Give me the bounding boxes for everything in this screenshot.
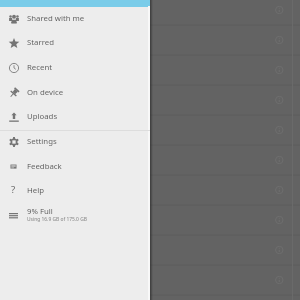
staticText: On device xyxy=(27,87,64,98)
button[interactable]: Starred xyxy=(0,31,150,56)
button[interactable]: Uploads xyxy=(0,105,150,130)
staticText: Settings xyxy=(27,136,57,147)
button[interactable] xyxy=(0,0,300,25)
staticText: Feedback xyxy=(27,161,62,172)
button[interactable] xyxy=(0,25,300,55)
button[interactable] xyxy=(0,85,300,115)
staticText: Recent xyxy=(27,62,53,73)
staticText: Uploads xyxy=(27,111,58,122)
button[interactable] xyxy=(0,175,300,205)
button[interactable] xyxy=(0,295,300,300)
staticText: Help xyxy=(27,185,44,196)
button[interactable]: 9% Full xyxy=(0,203,150,229)
button[interactable]: Shared with me xyxy=(0,7,150,32)
staticText: ? xyxy=(11,183,16,196)
button[interactable] xyxy=(0,55,300,85)
button[interactable]: ? xyxy=(0,179,150,204)
button[interactable] xyxy=(0,265,300,295)
button[interactable]: Settings xyxy=(0,130,150,155)
staticText: Shared with me xyxy=(27,13,85,24)
staticText: 9% Full xyxy=(27,206,53,217)
staticText: Starred xyxy=(27,37,54,48)
button[interactable] xyxy=(0,205,300,235)
button[interactable]: Feedback xyxy=(0,155,150,180)
button[interactable]: Recent xyxy=(0,56,150,81)
button[interactable] xyxy=(0,235,300,265)
button[interactable] xyxy=(0,145,300,175)
button[interactable] xyxy=(0,115,300,145)
button[interactable]: On device xyxy=(0,81,150,106)
staticText: Using 16.9 GB of 175.0 GB xyxy=(27,216,87,223)
